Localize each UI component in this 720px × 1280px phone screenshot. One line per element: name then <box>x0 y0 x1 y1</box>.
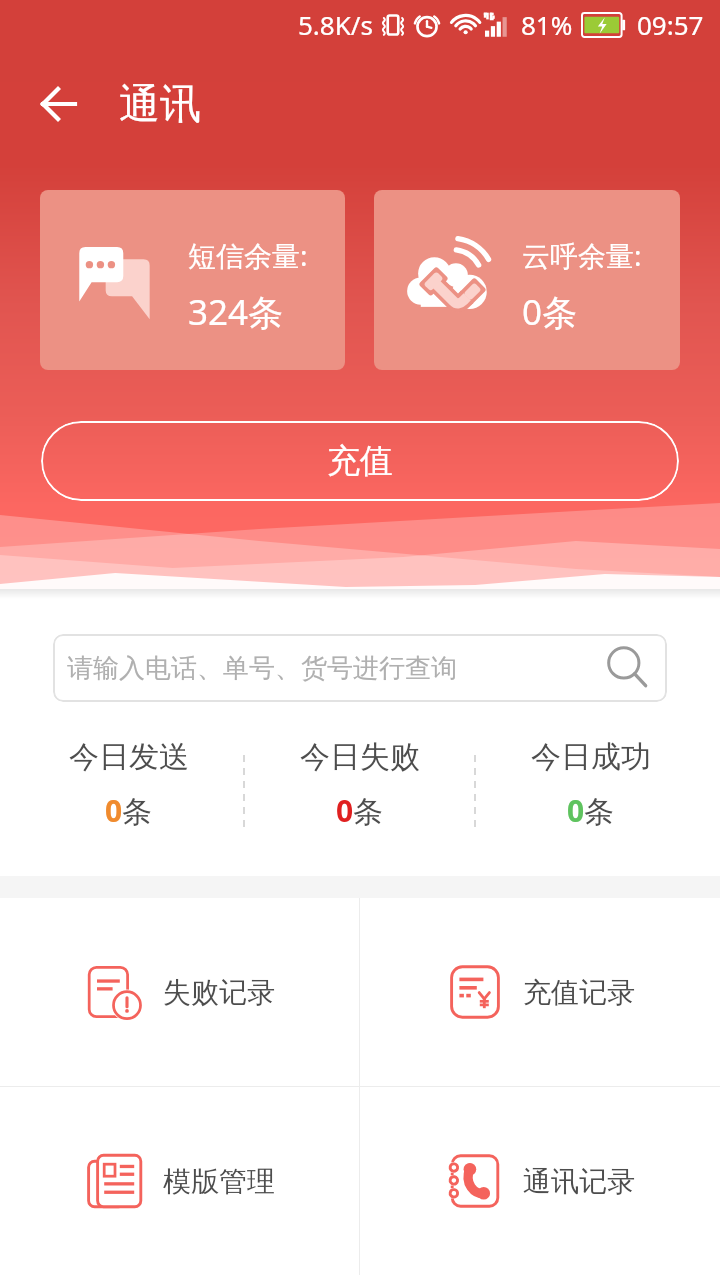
button[interactable]: 充值记录 <box>360 898 720 1086</box>
staticText: 短信余量: <box>188 236 308 274</box>
button[interactable]: 短信余量: <box>40 190 345 370</box>
button[interactable]: 失败记录 <box>0 898 359 1086</box>
staticText: 充值 <box>327 440 393 482</box>
staticText: 今日发送 <box>69 738 189 776</box>
staticText: 失败记录 <box>163 975 275 1010</box>
button[interactable]: 充值 <box>41 421 679 501</box>
button[interactable]: 通讯记录 <box>360 1087 720 1275</box>
button[interactable]: 今日发送 <box>15 738 243 846</box>
staticText: 通讯 <box>119 79 201 131</box>
button[interactable]: 模版管理 <box>0 1087 359 1275</box>
button[interactable]: 今日失败 <box>245 738 474 846</box>
button[interactable]: 请输入电话、单号、货号进行查询 <box>53 634 667 702</box>
staticText: 模版管理 <box>163 1164 275 1199</box>
staticText: 0条 <box>567 790 615 831</box>
button[interactable]: 今日成功 <box>476 738 705 846</box>
button[interactable]: Back <box>28 74 84 130</box>
staticText: 通讯记录 <box>523 1164 635 1199</box>
staticText: 请输入电话、单号、货号进行查询 <box>67 652 457 685</box>
staticText: 5.8K/s <box>298 7 373 42</box>
staticText: 81% <box>521 7 573 42</box>
staticText: 0条 <box>522 288 578 336</box>
staticText: 0条 <box>336 790 384 831</box>
staticText: 09:57 <box>637 7 704 42</box>
staticText: 充值记录 <box>523 975 635 1010</box>
button[interactable]: 云呼余量: <box>374 190 680 370</box>
staticText: 云呼余量: <box>522 236 642 274</box>
staticText: 今日失败 <box>300 738 420 776</box>
staticText: 今日成功 <box>531 738 651 776</box>
staticText: 324条 <box>188 288 284 336</box>
staticText: 0条 <box>105 790 153 831</box>
